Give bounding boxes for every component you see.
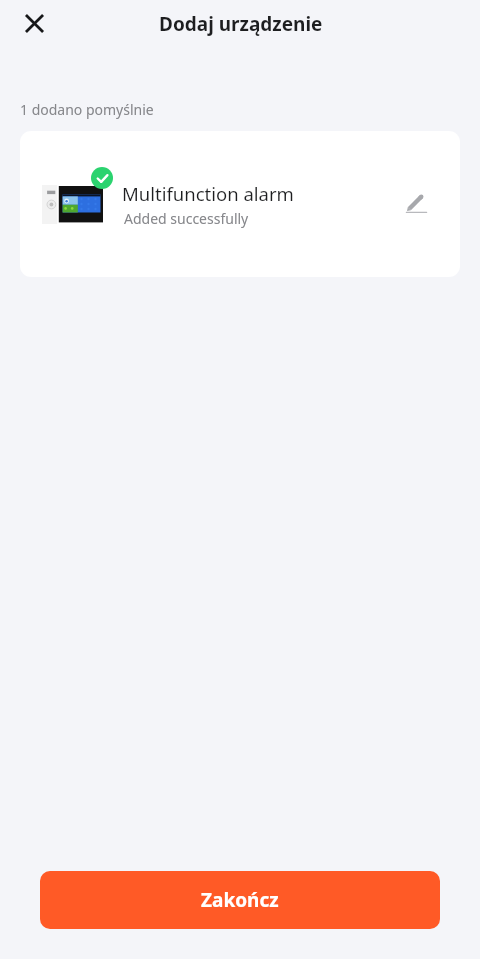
- staticText: Added successfully: [124, 209, 249, 228]
- button[interactable]: Multifunction alarm: [20, 131, 460, 277]
- button[interactable]: Edit: [397, 182, 435, 220]
- staticText: Zakończ: [201, 887, 279, 913]
- staticText: 1 dodano pomyślnie: [20, 100, 154, 119]
- button[interactable]: Close: [14, 3, 54, 43]
- staticText: Dodaj urządzenie: [159, 11, 323, 37]
- staticText: Multifunction alarm: [122, 181, 294, 206]
- button[interactable]: Zakończ: [40, 871, 440, 929]
